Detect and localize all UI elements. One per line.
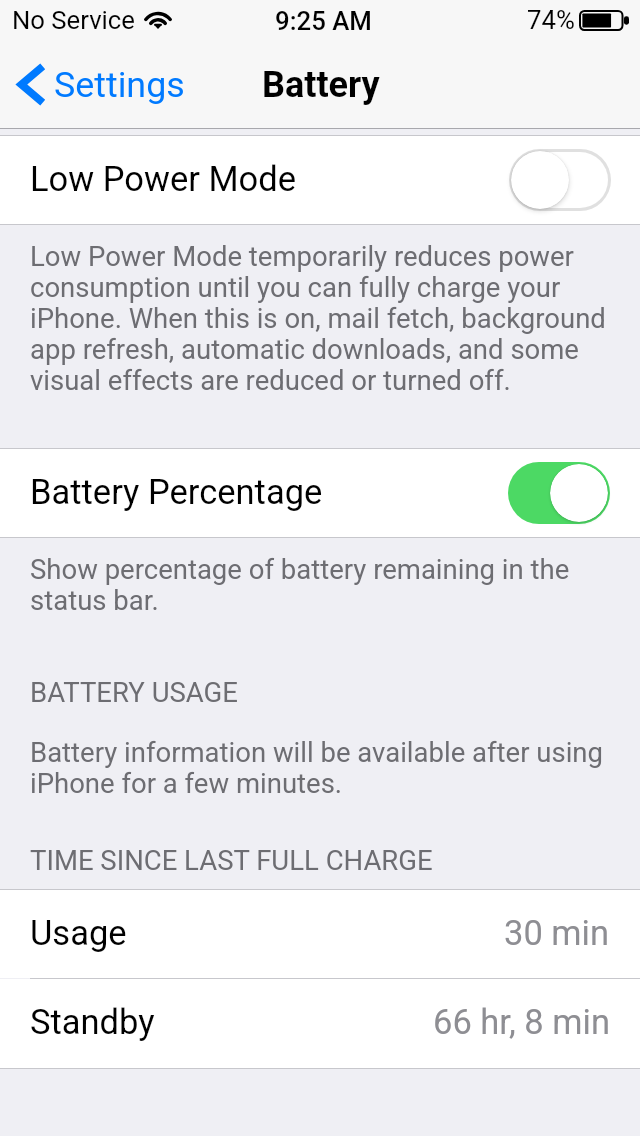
button[interactable]: Switch on [508,462,610,524]
button[interactable]: Standby [0,979,640,1068]
staticText: 9:25 AM [275,6,372,36]
button[interactable]: Settings [8,52,190,120]
staticText: app refresh, automatic downloads, and so… [30,333,579,365]
staticText: Usage [30,913,127,953]
staticText: Show percentage of battery remaining in … [30,553,570,585]
staticText: BATTERY USAGE [30,676,238,708]
staticText: 74% [527,5,575,35]
staticText: consumption until you can fully charge y… [30,271,561,303]
staticText: iPhone for a few minutes. [30,767,343,799]
staticText: No Service [12,5,135,35]
staticText: Battery information will be available af… [30,736,603,768]
staticText: Battery Percentage [30,472,323,512]
staticText: visual effects are reduced or turned off… [30,364,511,396]
staticText: status bar. [30,584,159,616]
staticText: Battery [262,64,380,106]
staticText: Low Power Mode [30,159,296,199]
staticText: 30 min [504,913,610,953]
button[interactable]: Low Power Mode [0,136,640,224]
staticText: TIME SINCE LAST FULL CHARGE [30,844,433,876]
staticText: Low Power Mode temporarily reduces power [30,240,574,272]
staticText: 66 hr, 8 min [433,1002,610,1042]
staticText: Settings [54,64,185,106]
button[interactable]: Switch off [509,149,611,211]
button[interactable]: Battery Percentage [0,449,640,537]
button[interactable]: Usage [0,890,640,978]
staticText: iPhone. When this is on, mail fetch, bac… [30,302,606,334]
staticText: Standby [30,1002,155,1042]
